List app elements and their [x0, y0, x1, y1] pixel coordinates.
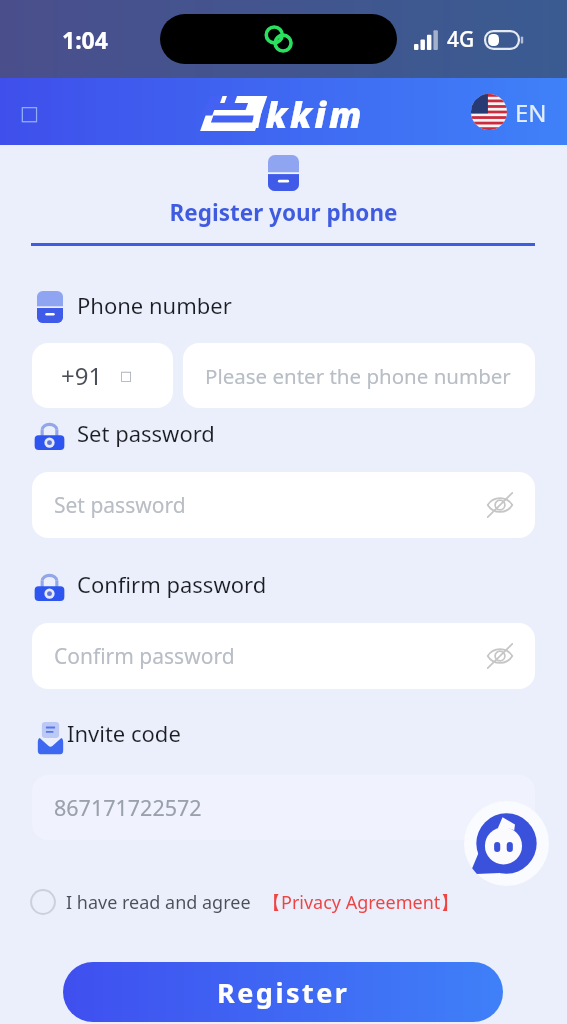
button[interactable]: Confirm password	[32, 623, 535, 689]
staticText: 1:04	[62, 24, 108, 55]
button[interactable]: Show password	[486, 491, 514, 519]
staticText: □	[120, 368, 133, 383]
staticText: ikkim	[251, 91, 365, 139]
staticText: 【Privacy Agreement】	[263, 890, 459, 915]
button[interactable]: EN	[471, 94, 547, 130]
staticText: □	[20, 101, 39, 124]
button[interactable]: Back	[9, 92, 49, 132]
button[interactable]: +91	[32, 343, 173, 408]
button[interactable]: Set password	[32, 472, 535, 538]
staticText: 867171722572	[54, 793, 202, 822]
staticText: 4G	[447, 25, 475, 54]
staticText: Phone number	[77, 290, 232, 320]
button[interactable]: Show password	[486, 642, 514, 670]
staticText: I have read and agree	[66, 890, 251, 915]
button[interactable]: I have read and agree	[30, 887, 459, 917]
staticText: Confirm password	[77, 569, 267, 599]
staticText: Please enter the phone number	[205, 362, 511, 390]
button[interactable]: Register	[63, 962, 503, 1022]
staticText: +91	[61, 359, 103, 392]
staticText: EN	[515, 96, 547, 129]
button[interactable]: 867171722572	[32, 775, 535, 840]
staticText: Invite code	[67, 718, 181, 748]
staticText: Set password	[77, 418, 215, 448]
button[interactable]: Please enter the phone number	[183, 343, 535, 408]
button[interactable]: Customer service chat	[464, 801, 549, 886]
staticText: Register	[217, 974, 350, 1011]
staticText: Register your phone	[0, 197, 567, 228]
staticText: Set password	[54, 491, 186, 520]
staticText: Confirm password	[54, 642, 235, 671]
